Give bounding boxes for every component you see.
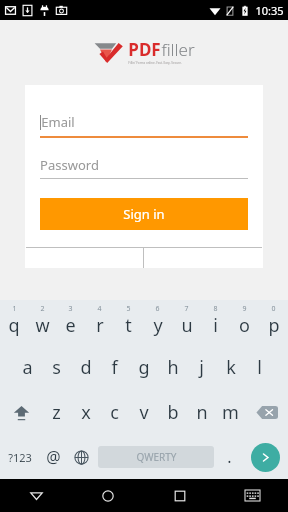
staticText: t [125, 313, 132, 338]
button[interactable]: z [42, 390, 71, 435]
staticText: Sign in [123, 205, 165, 223]
staticText: l [257, 355, 262, 380]
button[interactable]: Sign in [40, 198, 248, 230]
button[interactable]: 5 [114, 300, 143, 345]
staticText: 8 [213, 304, 218, 314]
button[interactable]: a [13, 345, 42, 390]
button[interactable]: x [71, 390, 100, 435]
button[interactable]: 4 [85, 300, 114, 345]
button[interactable]: Home [72, 479, 144, 512]
staticText: c [110, 400, 119, 425]
button[interactable]: Next [242, 435, 288, 479]
staticText: y [153, 313, 163, 338]
staticText: u [181, 313, 193, 338]
staticText: h [167, 355, 179, 380]
staticText: f [111, 355, 118, 380]
button[interactable]: 0 [259, 300, 288, 345]
staticText: . [227, 446, 232, 468]
button[interactable]: h [158, 345, 187, 390]
staticText: b [167, 400, 179, 425]
staticText: o [239, 313, 250, 338]
button[interactable]: QWERTY [98, 446, 214, 468]
button[interactable]: k [216, 345, 245, 390]
staticText: QWERTY [136, 450, 177, 464]
button[interactable]: 2 [28, 300, 56, 345]
staticText: j [199, 355, 204, 380]
button[interactable]: n [187, 390, 216, 435]
staticText: filler [161, 38, 195, 61]
button[interactable]: Email [40, 108, 248, 136]
button[interactable]: Hide keyboard [216, 479, 288, 512]
staticText: 6 [155, 304, 160, 314]
staticText: k [226, 355, 236, 380]
staticText: r [96, 313, 104, 338]
staticText: Password [40, 156, 99, 174]
staticText: 4 [97, 304, 102, 314]
button[interactable]: 6 [143, 300, 172, 345]
staticText: v [139, 400, 149, 425]
staticText: 0 [271, 304, 276, 314]
staticText: PDF [128, 38, 161, 61]
button[interactable]: Backspace [245, 390, 288, 435]
staticText: 5 [126, 304, 131, 314]
button[interactable]: 7 [172, 300, 201, 345]
button[interactable]: . [216, 435, 242, 479]
staticText: q [8, 313, 20, 338]
button[interactable]: 1 [0, 300, 28, 345]
staticText: ?123 [8, 450, 32, 465]
button[interactable]: Shift [0, 390, 42, 435]
staticText: 2 [40, 304, 45, 314]
button[interactable]: Change language [67, 435, 96, 479]
staticText: Fillin' Forms online. Fast. Easy. Secure… [128, 61, 182, 65]
staticText: n [196, 400, 208, 425]
button[interactable]: c [100, 390, 129, 435]
staticText: 7 [184, 304, 189, 314]
staticText: m [222, 400, 239, 425]
button[interactable]: Password [40, 152, 248, 178]
staticText: Email [41, 113, 75, 131]
button[interactable]: s [42, 345, 71, 390]
button[interactable]: Back [0, 479, 72, 512]
button[interactable]: b [158, 390, 187, 435]
staticText: x [81, 400, 91, 425]
staticText: w [35, 313, 50, 338]
staticText: 9 [242, 304, 247, 314]
staticText: @ [46, 446, 61, 468]
button[interactable]: m [216, 390, 245, 435]
button[interactable]: f [100, 345, 129, 390]
button[interactable]: g [129, 345, 158, 390]
button[interactable]: v [129, 390, 158, 435]
button[interactable]: l [245, 345, 274, 390]
button[interactable]: Recents [144, 479, 216, 512]
staticText: z [52, 400, 61, 425]
button[interactable]: ?123 [0, 435, 39, 479]
button[interactable]: 8 [201, 300, 230, 345]
button[interactable]: 3 [56, 300, 85, 345]
staticText: g [138, 355, 150, 380]
staticText: 10:35 [255, 3, 284, 18]
staticText: i [213, 313, 218, 338]
staticText: e [65, 313, 76, 338]
button[interactable]: d [71, 345, 100, 390]
staticText: s [52, 355, 61, 380]
staticText: a [22, 355, 33, 380]
button[interactable]: @ [39, 435, 67, 479]
button[interactable]: 9 [230, 300, 259, 345]
staticText: 1 [12, 304, 17, 314]
staticText: p [268, 313, 280, 338]
staticText: 3 [68, 304, 73, 314]
staticText: d [80, 355, 92, 380]
button[interactable]: j [187, 345, 216, 390]
